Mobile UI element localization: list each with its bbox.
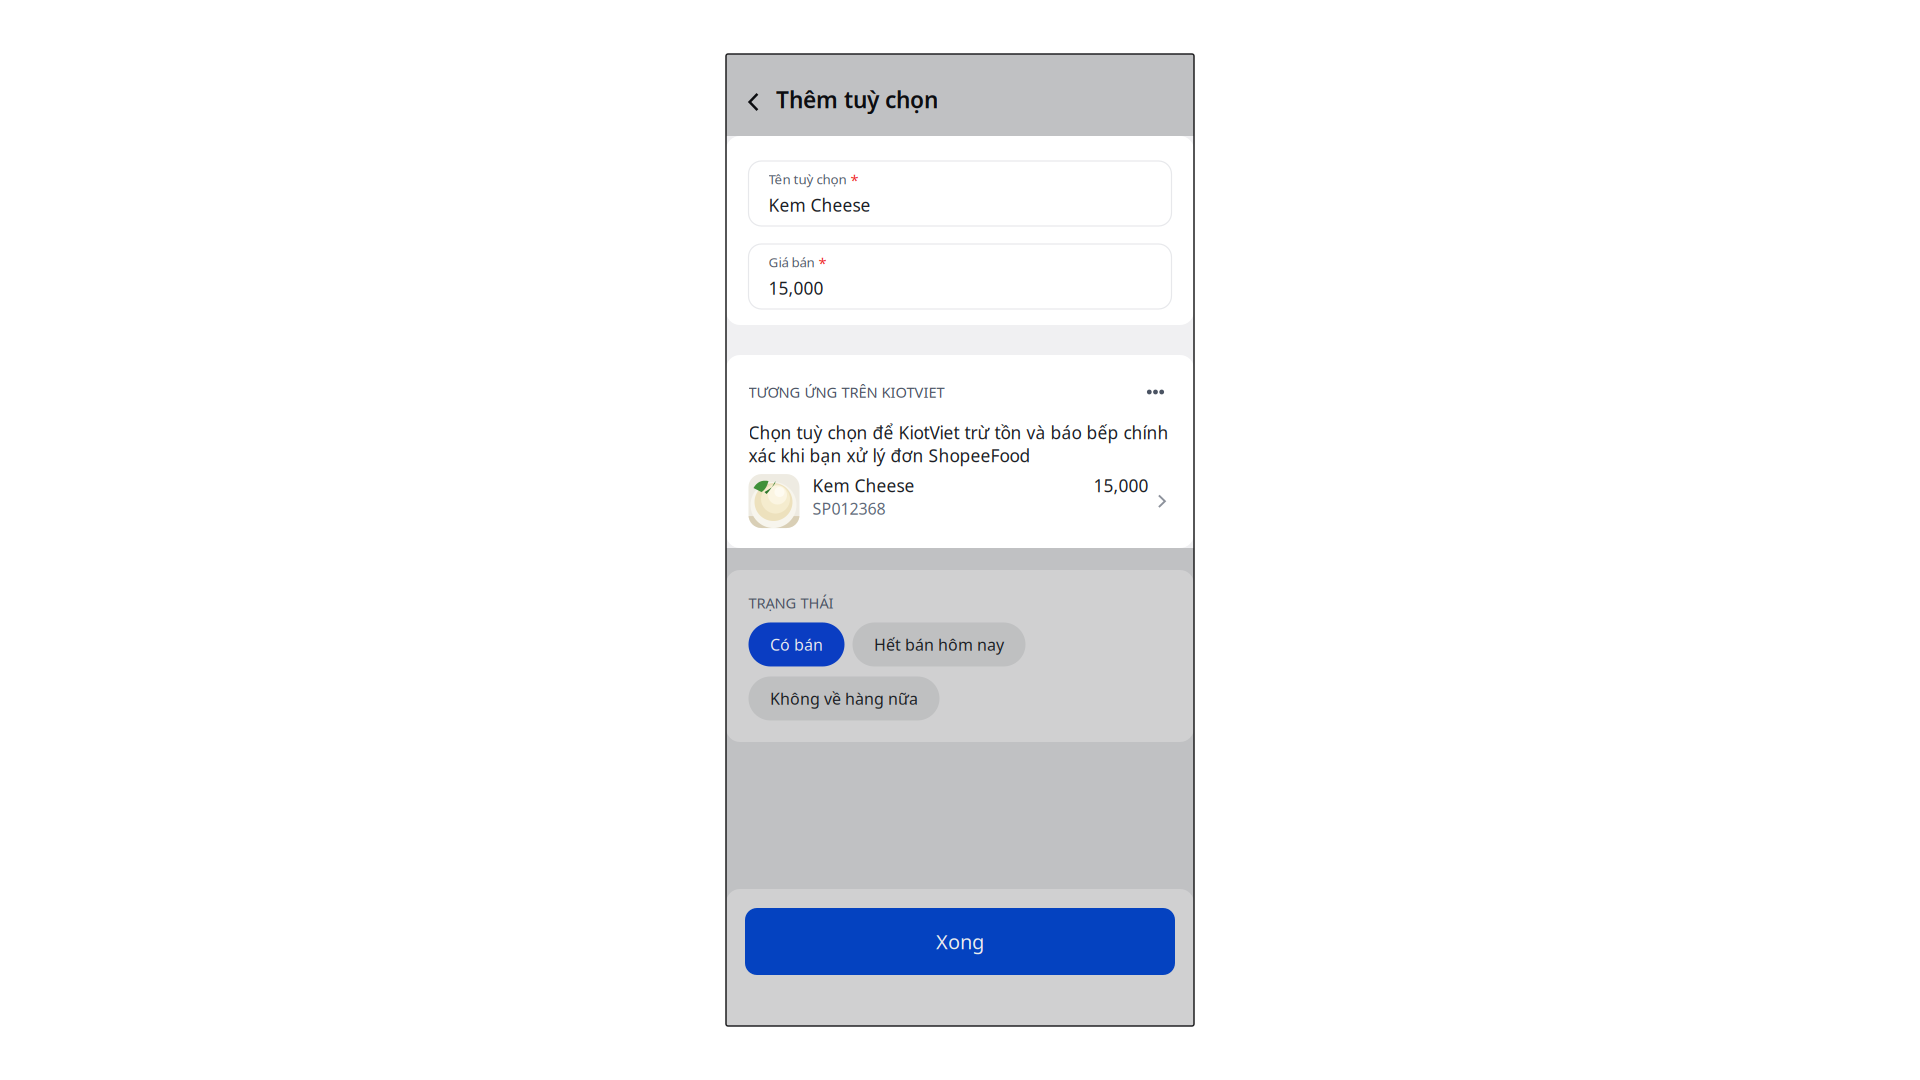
staticText: SP012368: [812, 498, 885, 519]
staticText: Không về hàng nữa: [770, 688, 918, 709]
button[interactable]: Không về hàng nữa: [748, 676, 939, 720]
staticText: Xong: [936, 928, 984, 955]
button[interactable]: More options: [1137, 379, 1171, 405]
staticText: 15,000: [1093, 474, 1148, 497]
staticText: Chọn tuỳ chọn để KiotViet trừ tồn và báo…: [748, 421, 1168, 467]
staticText: Kem Cheese: [768, 193, 870, 216]
staticText: TRẠNG THÁI: [748, 593, 833, 612]
staticText: *: [818, 253, 826, 273]
button[interactable]: Back: [726, 56, 759, 114]
staticText: Kem Cheese: [812, 474, 914, 497]
staticText: Thêm tuỳ chọn: [776, 84, 938, 114]
staticText: TƯƠNG ỨNG TRÊN KIOTVIET: [748, 382, 944, 402]
button[interactable]: Có bán: [748, 622, 844, 666]
staticText: Giá bán: [768, 253, 814, 271]
staticText: 15,000: [768, 276, 823, 299]
button[interactable]: Kem Cheese: [748, 467, 1171, 528]
staticText: Tên tuỳ chọn: [768, 170, 846, 188]
staticText: *: [850, 170, 858, 190]
button[interactable]: Xong: [745, 908, 1175, 975]
staticText: Hết bán hôm nay: [874, 634, 1004, 655]
staticText: Có bán: [770, 634, 823, 655]
button[interactable]: Hết bán hôm nay: [852, 622, 1025, 666]
